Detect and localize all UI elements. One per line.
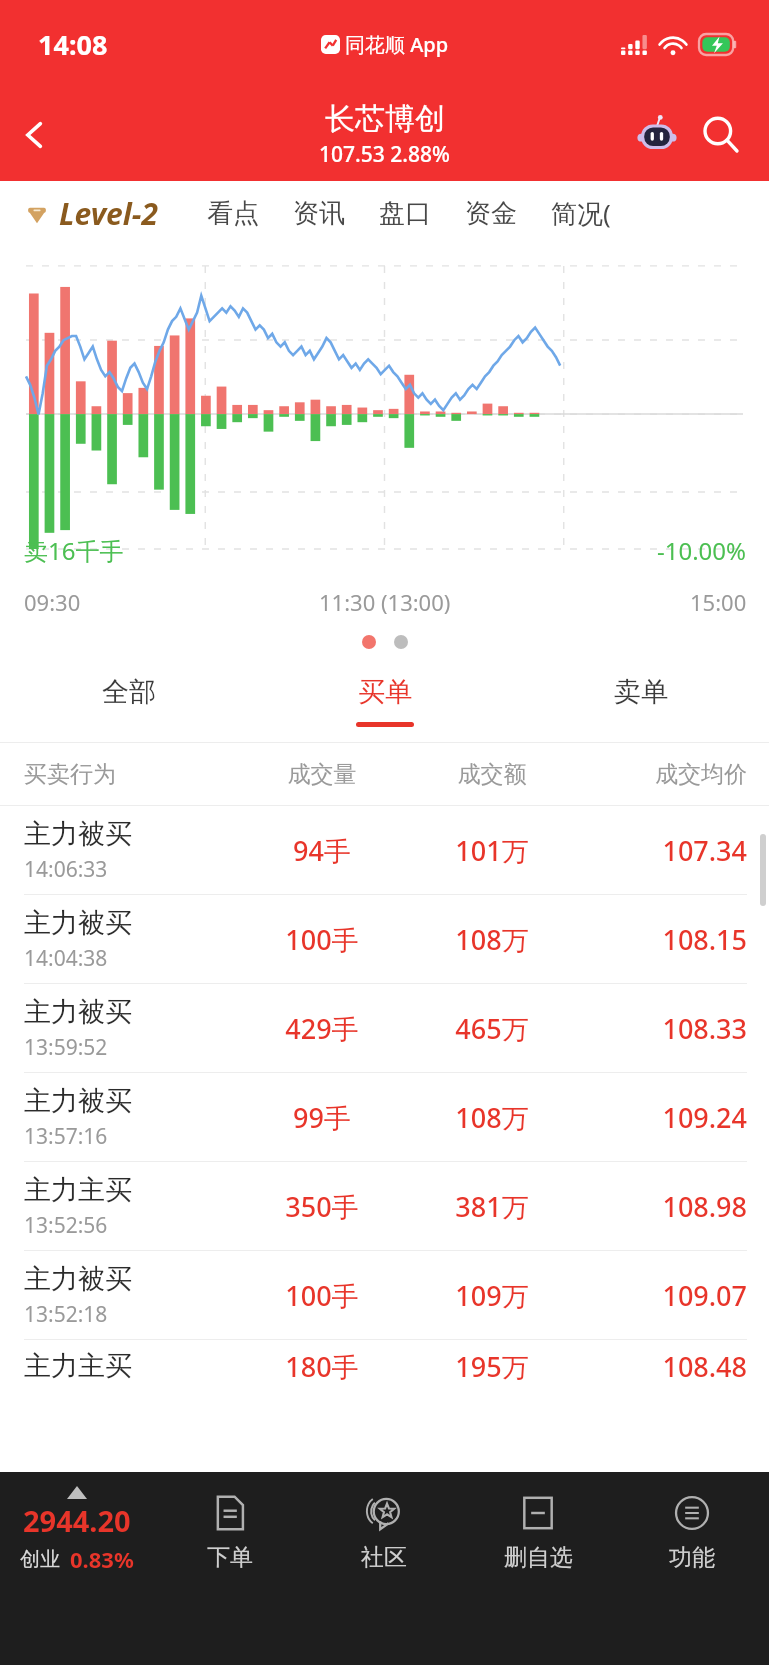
staticText: 卖单 bbox=[614, 675, 668, 709]
button[interactable]: 主力被买 bbox=[0, 1251, 769, 1340]
button[interactable]: 看点 bbox=[207, 197, 259, 230]
button[interactable]: AI assistant bbox=[625, 103, 689, 167]
staticText: -10.00% bbox=[657, 534, 747, 567]
button[interactable]: 主力被买 bbox=[0, 984, 769, 1073]
staticText: 下单 bbox=[207, 1543, 253, 1572]
button[interactable]: 功能 bbox=[615, 1494, 769, 1665]
staticText: 创业 bbox=[20, 1547, 60, 1572]
staticText: 主力被买 bbox=[24, 906, 132, 940]
staticText: 14:04:38 bbox=[24, 944, 108, 973]
staticText: 350手 bbox=[237, 1188, 407, 1225]
staticText: 465万 bbox=[407, 1010, 577, 1047]
staticText: 成交量 bbox=[237, 760, 407, 789]
staticText: 13:57:16 bbox=[24, 1122, 108, 1151]
button[interactable]: Search bbox=[689, 103, 753, 167]
button[interactable]: 主力主买 bbox=[0, 1340, 769, 1392]
staticText: 买单 bbox=[358, 675, 412, 709]
button[interactable]: 主力主买 bbox=[0, 1162, 769, 1251]
staticText: 11:30 (13:00) bbox=[319, 587, 451, 617]
staticText: 109.24 bbox=[577, 1099, 747, 1136]
staticText: 卖16千手 bbox=[24, 534, 124, 567]
staticText: 主力被买 bbox=[24, 817, 132, 851]
staticText: 109万 bbox=[407, 1277, 577, 1314]
staticText: 108万 bbox=[407, 1099, 577, 1136]
staticText: 主力被买 bbox=[24, 1262, 132, 1296]
staticText: 94手 bbox=[237, 832, 407, 869]
staticText: 14:08 bbox=[38, 26, 108, 63]
staticText: 同花顺 App bbox=[345, 31, 449, 58]
staticText: 108.98 bbox=[577, 1188, 747, 1225]
staticText: 13:59:52 bbox=[24, 1033, 108, 1062]
staticText: 429手 bbox=[237, 1010, 407, 1047]
button[interactable]: 资讯 bbox=[293, 197, 345, 230]
staticText: 195万 bbox=[407, 1348, 577, 1385]
button[interactable]: 下单 bbox=[153, 1494, 307, 1665]
staticText: 13:52:56 bbox=[24, 1211, 108, 1240]
button[interactable]: Level-2 bbox=[26, 193, 158, 234]
staticText: 381万 bbox=[407, 1188, 577, 1225]
button[interactable]: 2944.20 bbox=[0, 1486, 153, 1665]
staticText: 长芯博创 bbox=[325, 100, 445, 138]
button[interactable]: 社区 bbox=[307, 1494, 461, 1665]
staticText: 社区 bbox=[361, 1543, 407, 1572]
button[interactable]: 盘口 bbox=[379, 197, 431, 230]
staticText: 100手 bbox=[237, 1277, 407, 1314]
staticText: 简况( bbox=[551, 195, 611, 231]
button[interactable]: 资金 bbox=[465, 197, 517, 230]
staticText: 108.33 bbox=[577, 1010, 747, 1047]
staticText: 100手 bbox=[237, 921, 407, 958]
staticText: 主力主买 bbox=[24, 1173, 132, 1207]
staticText: 13:52:18 bbox=[24, 1300, 108, 1329]
staticText: 108.15 bbox=[577, 921, 747, 958]
staticText: 109.07 bbox=[577, 1277, 747, 1314]
staticText: 108万 bbox=[407, 921, 577, 958]
staticText: 资金 bbox=[465, 197, 517, 230]
staticText: 资讯 bbox=[293, 197, 345, 230]
button[interactable]: 主力被买 bbox=[0, 806, 769, 895]
staticText: 180手 bbox=[237, 1348, 407, 1385]
staticText: 成交额 bbox=[407, 760, 577, 789]
button[interactable]: 全部 bbox=[0, 659, 257, 743]
button[interactable]: Back bbox=[0, 100, 70, 170]
staticText: 101万 bbox=[407, 832, 577, 869]
button[interactable]: 主力被买 bbox=[0, 1073, 769, 1162]
staticText: 107.34 bbox=[577, 832, 747, 869]
staticText: 删自选 bbox=[504, 1543, 573, 1572]
staticText: 主力被买 bbox=[24, 995, 132, 1029]
staticText: 主力被买 bbox=[24, 1084, 132, 1118]
staticText: 全部 bbox=[102, 675, 156, 709]
button[interactable]: 卖单 bbox=[513, 659, 769, 743]
staticText: 09:30 bbox=[24, 587, 81, 617]
button[interactable]: 主力被买 bbox=[0, 895, 769, 984]
staticText: 买卖行为 bbox=[24, 760, 237, 789]
staticText: 107.53 2.88% bbox=[319, 140, 450, 169]
staticText: 99手 bbox=[237, 1099, 407, 1136]
staticText: 功能 bbox=[669, 1543, 715, 1572]
staticText: 108.48 bbox=[577, 1348, 747, 1385]
staticText: Level-2 bbox=[59, 193, 158, 234]
staticText: 15:00 bbox=[690, 587, 747, 617]
staticText: 0.83% bbox=[70, 1544, 134, 1574]
button[interactable]: 简况( bbox=[551, 195, 611, 231]
button[interactable]: 删自选 bbox=[461, 1494, 615, 1665]
button[interactable]: 买单 bbox=[257, 659, 513, 743]
staticText: 看点 bbox=[207, 197, 259, 230]
staticText: 成交均价 bbox=[577, 760, 747, 789]
staticText: 盘口 bbox=[379, 197, 431, 230]
staticText: 2944.20 bbox=[23, 1501, 131, 1540]
staticText: 14:06:33 bbox=[24, 855, 108, 884]
staticText: 主力主买 bbox=[24, 1349, 132, 1383]
